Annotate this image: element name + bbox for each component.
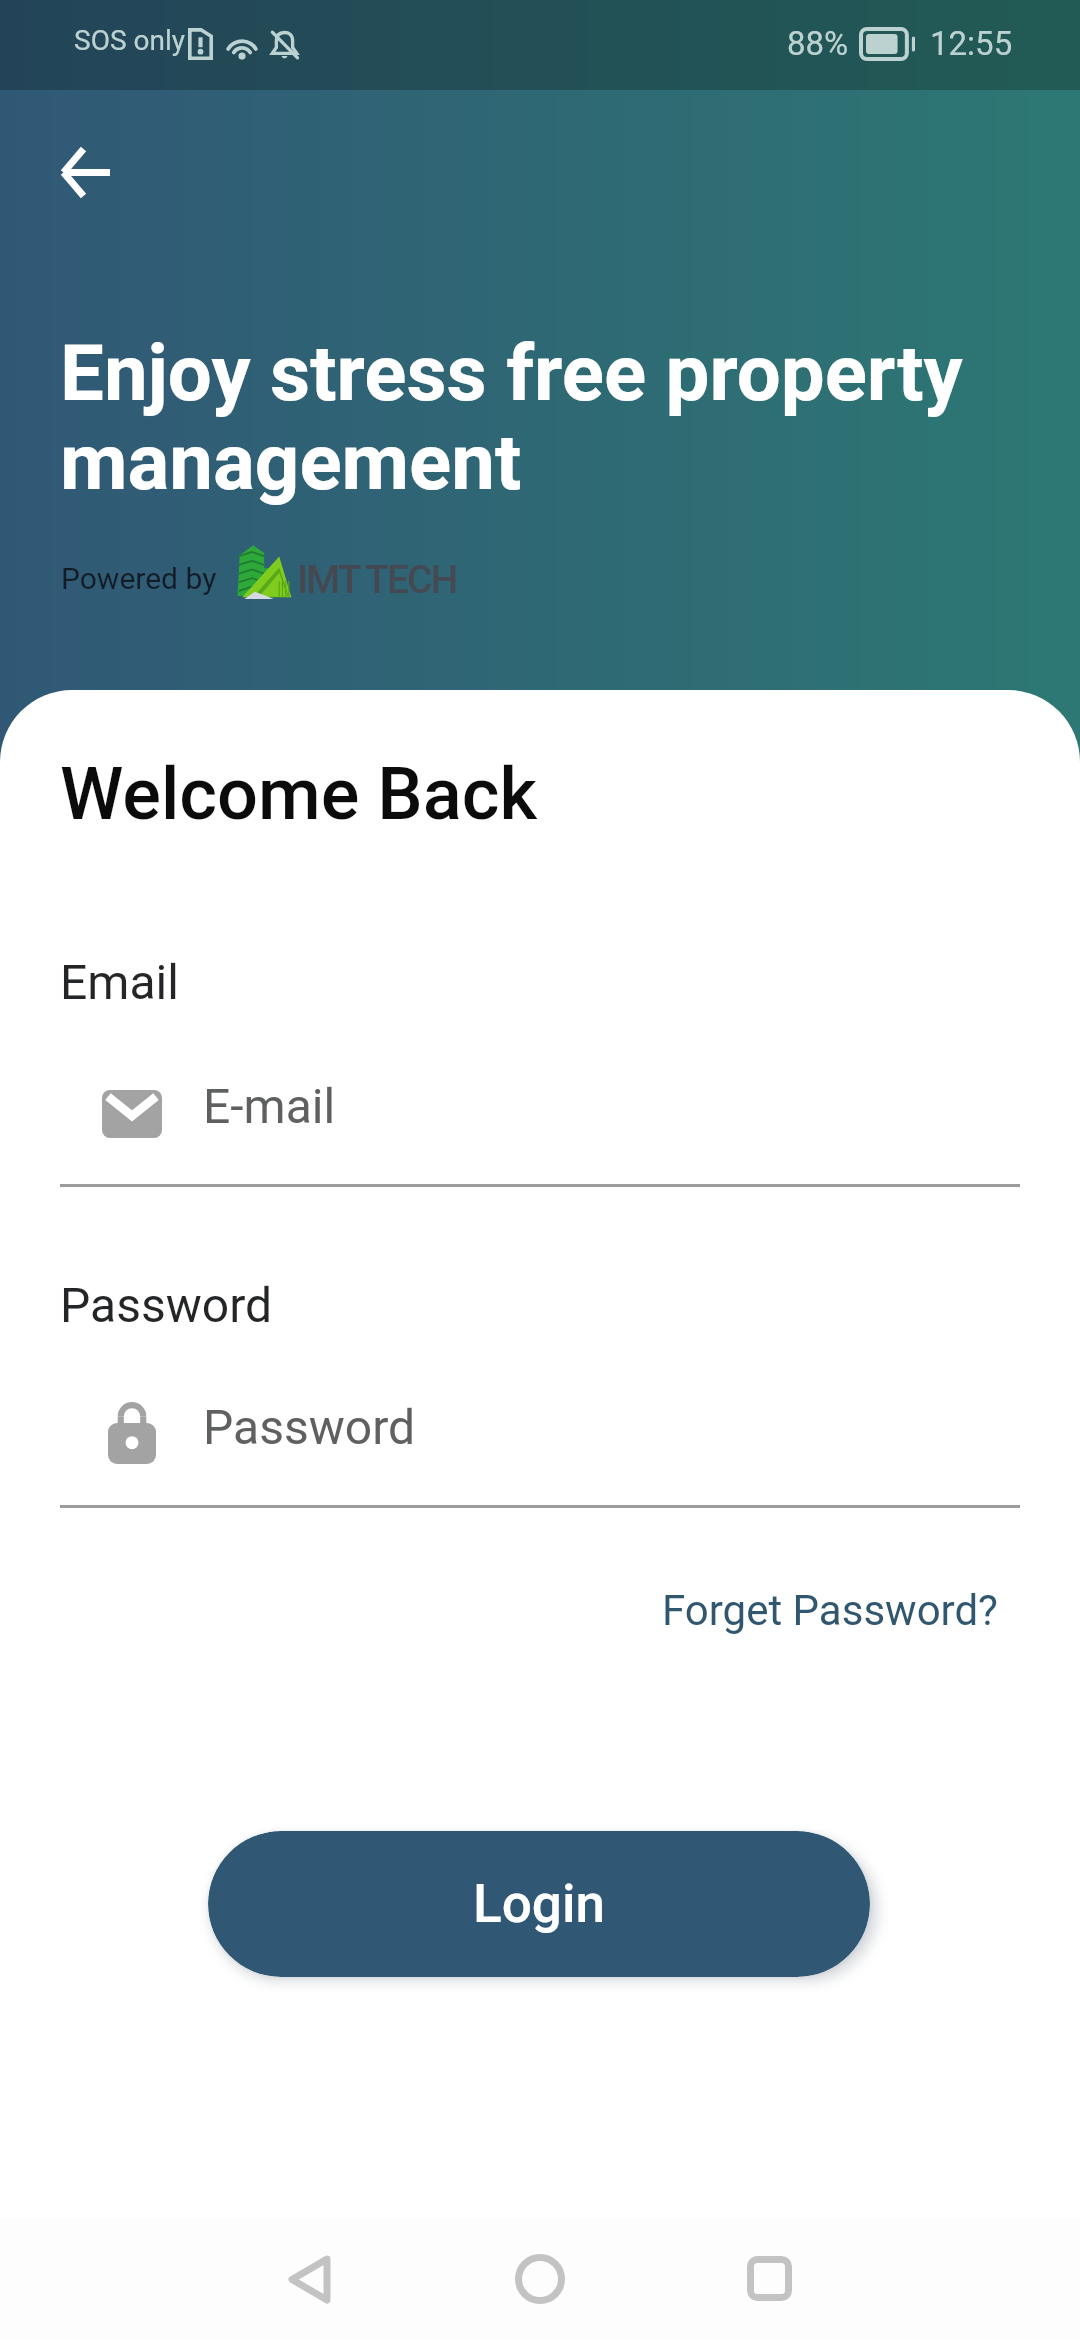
staticText: Password <box>203 1399 416 1455</box>
button[interactable]: Forget Password? <box>640 1570 1020 1651</box>
staticText: Forget Password? <box>662 1586 998 1635</box>
button[interactable] <box>60 1060 1020 1172</box>
staticText: 12:55 <box>930 24 1013 63</box>
staticText: Password <box>60 1277 273 1333</box>
staticText: E-mail <box>203 1078 336 1134</box>
staticText: 88% <box>787 24 849 63</box>
button[interactable]: Back <box>249 2234 369 2324</box>
button[interactable]: Back <box>5 117 165 227</box>
staticText: SOS only <box>74 24 185 57</box>
staticText: Login <box>473 1873 605 1935</box>
staticText: Welcome Back <box>60 752 538 836</box>
staticText: Email <box>60 954 179 1010</box>
button[interactable]: Home <box>480 2234 600 2324</box>
staticText: Powered by <box>61 561 217 596</box>
staticText: IMT TECH <box>297 557 457 603</box>
button[interactable] <box>60 1380 1020 1492</box>
button[interactable]: Recent apps <box>709 2233 829 2323</box>
staticText: Enjoy stress free property management <box>60 328 1050 509</box>
button[interactable]: Login <box>208 1831 870 1977</box>
